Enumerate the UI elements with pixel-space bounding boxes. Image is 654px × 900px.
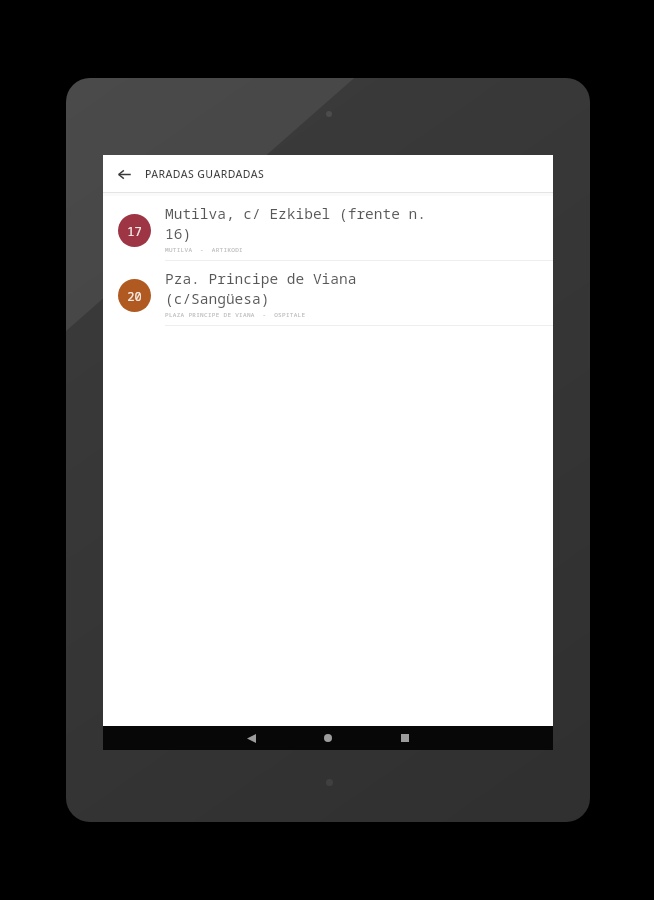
- staticText: PLAZA PRINCIPE DE VIANA - OSPITALE: [165, 311, 306, 319]
- staticText: Mutilva, c/ Ezkibel (frente n. 16): [165, 203, 426, 244]
- staticText: Pza. Principe de Viana (c/Sangüesa): [165, 268, 357, 309]
- button[interactable]: Back: [225, 726, 277, 750]
- button[interactable]: Home: [302, 726, 354, 750]
- button[interactable]: Navigate up: [110, 160, 138, 188]
- staticText: 20: [127, 288, 142, 304]
- button[interactable]: 20: [103, 261, 553, 325]
- staticText: MUTILVA - ARTIKODI: [165, 246, 244, 254]
- staticText: 17: [127, 223, 142, 239]
- button[interactable]: 17: [103, 196, 553, 260]
- staticText: PARADAS GUARDADAS: [145, 167, 265, 181]
- button[interactable]: Recent apps: [379, 726, 431, 750]
